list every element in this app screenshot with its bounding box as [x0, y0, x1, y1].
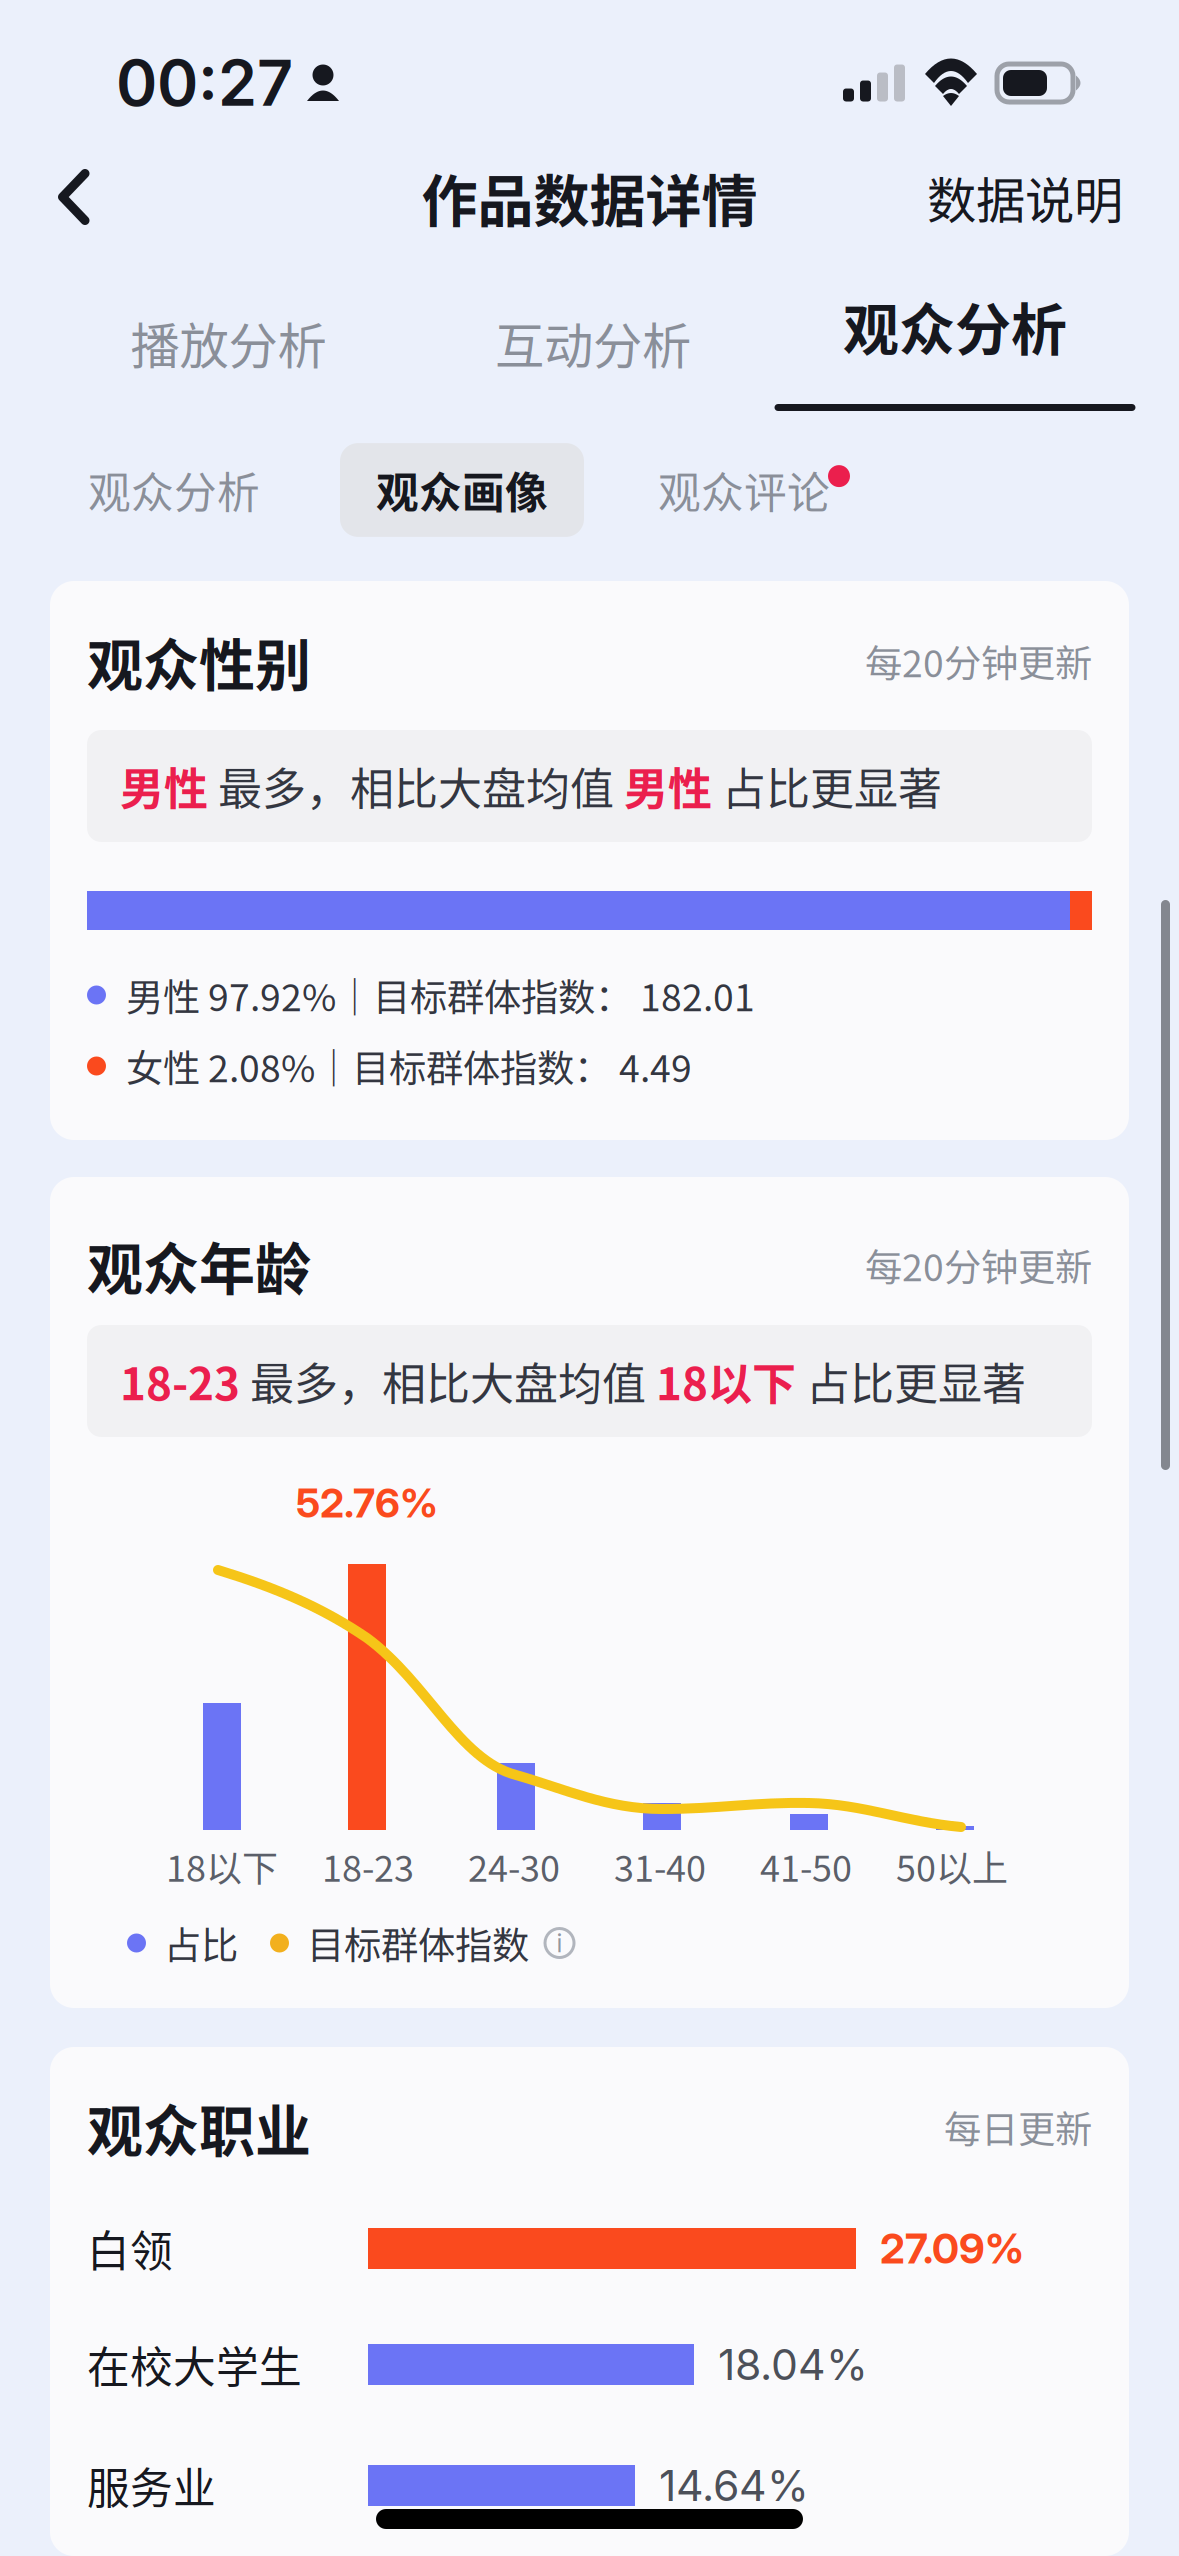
staticText: 每20分钟更新 [865, 1238, 1092, 1292]
button[interactable]: 观众分析 [78, 433, 270, 547]
staticText: 27.09% [880, 2223, 1024, 2273]
staticText: 女性 2.08%｜目标群体指数： 4.49 [126, 1039, 692, 1093]
staticText: 男性 [624, 754, 712, 818]
staticText: 互动分析 [495, 307, 691, 378]
staticText: 观众分析 [843, 285, 1067, 366]
staticText: 白领 [87, 2218, 173, 2279]
staticText: 观众年龄 [87, 1224, 311, 1306]
button[interactable]: 播放分析 [46, 247, 411, 438]
staticText: 24-30 [468, 1840, 560, 1892]
staticText: 18以下 [166, 1840, 278, 1892]
staticText: 00:27 [116, 45, 293, 121]
staticText: 男性 97.92%｜目标群体指数： 182.01 [126, 968, 755, 1022]
staticText: 目标群体指数 [307, 1916, 529, 1970]
button[interactable]: 观众评论 [648, 431, 840, 549]
staticText: 男性 [120, 754, 208, 818]
staticText: 14.64% [659, 2460, 809, 2511]
staticText: 观众评论 [658, 459, 830, 521]
staticText: 52.76% [296, 1479, 438, 1527]
button[interactable]: 互动分析 [411, 247, 775, 438]
staticText: 观众画像 [376, 459, 548, 521]
staticText: 占比 [164, 1916, 238, 1970]
staticText: 41-50 [760, 1840, 852, 1892]
staticText: 18以下 [656, 1349, 796, 1413]
staticText: 数据说明 [927, 161, 1123, 233]
staticText: 最多，相比大盘均值 [208, 754, 624, 818]
staticText: 作品数据详情 [421, 156, 757, 238]
staticText: 18-23 [120, 1349, 240, 1413]
button[interactable]: 观众画像 [340, 443, 584, 537]
staticText: 18-23 [322, 1840, 414, 1892]
staticText: 观众职业 [87, 2086, 311, 2168]
staticText: 在校大学生 [87, 2334, 302, 2395]
button[interactable]: Back [28, 147, 120, 247]
staticText: 占比更显著 [712, 754, 942, 818]
button[interactable]: 观众分析 [775, 247, 1135, 438]
staticText: i [556, 1928, 562, 1958]
button[interactable]: 数据说明 [913, 139, 1137, 255]
staticText: 50以上 [896, 1840, 1008, 1892]
staticText: 播放分析 [130, 307, 326, 378]
staticText: 占比更显著 [796, 1349, 1026, 1413]
staticText: 最多，相比大盘均值 [240, 1349, 656, 1413]
staticText: 18.04% [718, 2339, 868, 2390]
staticText: 31-40 [614, 1840, 706, 1892]
staticText: 每20分钟更新 [865, 634, 1092, 688]
staticText: 观众分析 [88, 459, 260, 521]
staticText: 每日更新 [944, 2100, 1092, 2154]
staticText: 观众性别 [87, 620, 311, 702]
staticText: 服务业 [87, 2455, 216, 2516]
